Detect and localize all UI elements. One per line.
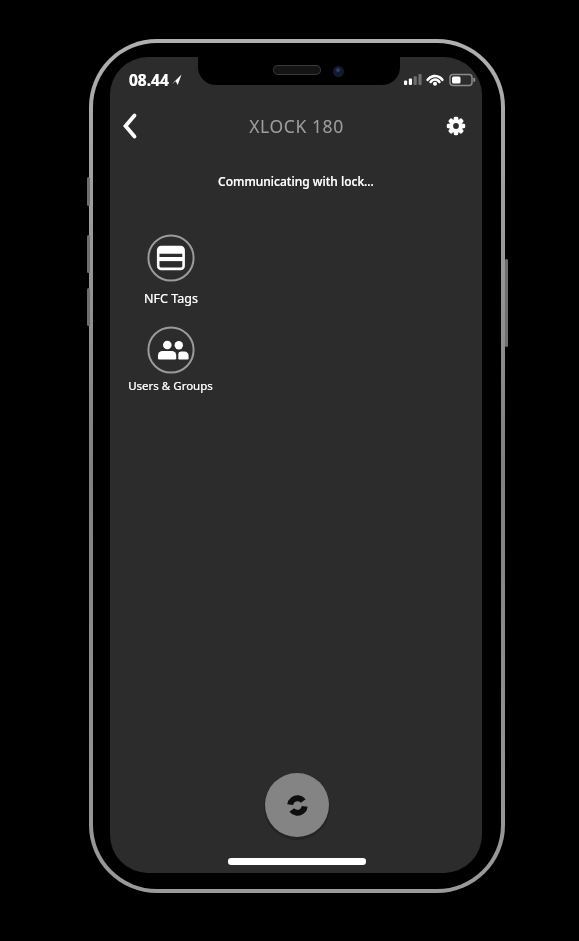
staticText: NFC Tags <box>144 290 198 307</box>
button[interactable] <box>442 112 470 140</box>
staticText: Communicating with lock... <box>218 173 374 189</box>
button[interactable]: NFC Tags <box>110 235 231 298</box>
staticText: XLOCK 180 <box>249 114 344 138</box>
staticText: Users & Groups <box>128 378 213 394</box>
button[interactable]: Users & Groups <box>110 327 231 389</box>
button[interactable] <box>265 773 329 837</box>
button[interactable] <box>116 112 144 140</box>
staticText: 08.44 <box>129 69 169 90</box>
